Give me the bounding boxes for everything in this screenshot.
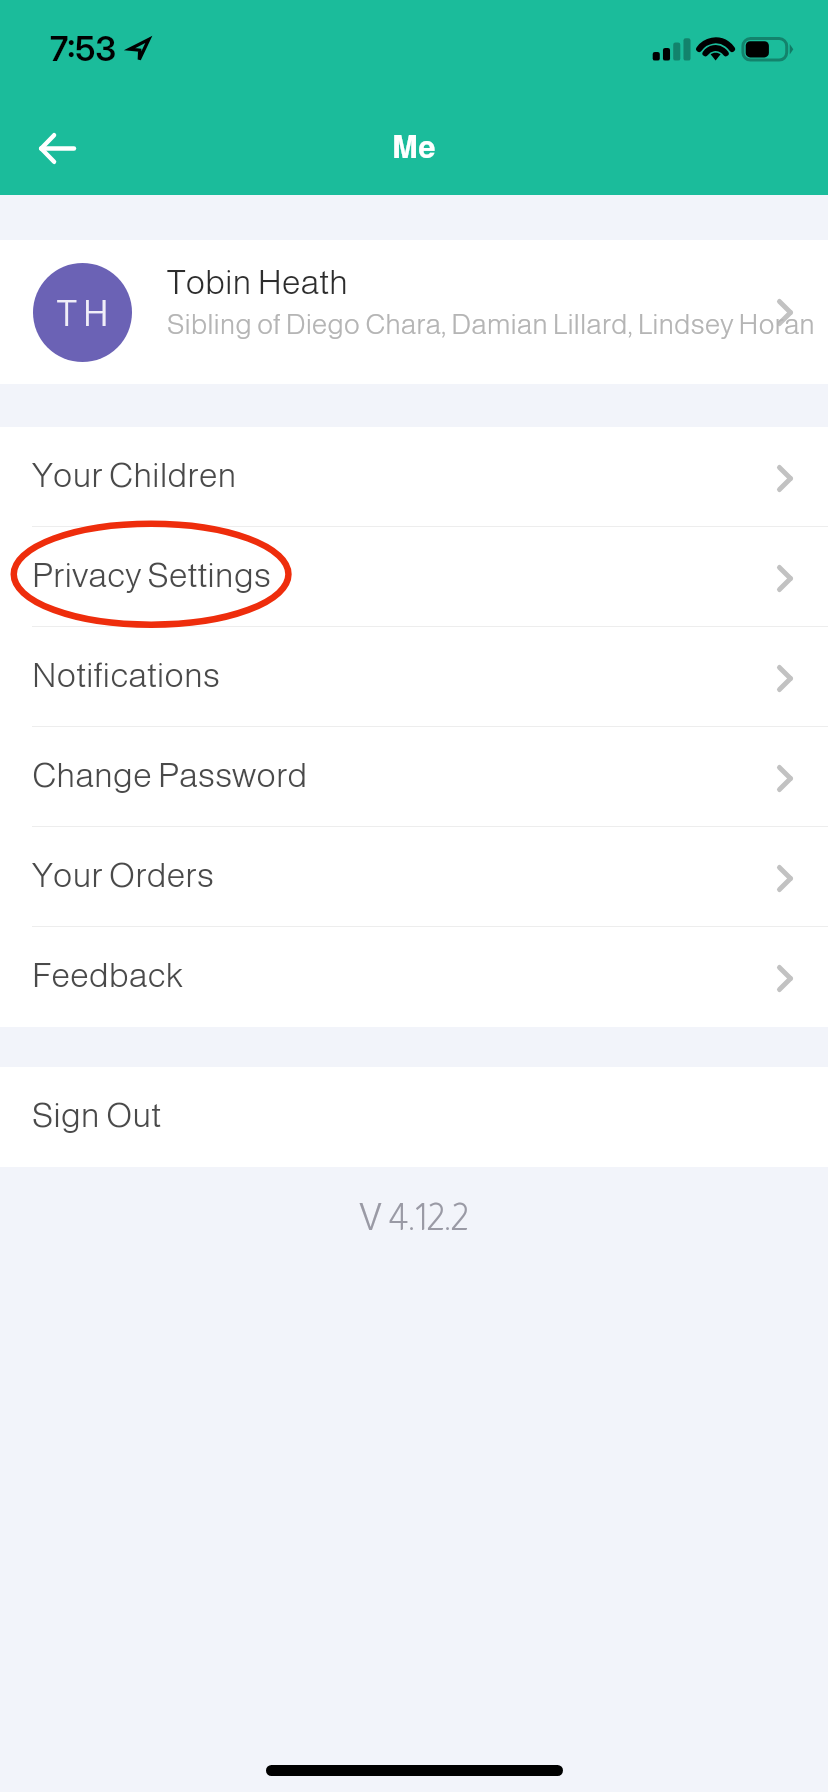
button[interactable]: Back xyxy=(12,104,100,192)
button[interactable]: Change Password xyxy=(0,727,828,827)
staticText: Privacy Settings xyxy=(32,556,777,594)
staticText: Feedback xyxy=(32,956,777,994)
staticText: Change Password xyxy=(32,756,777,794)
staticText: Sign Out xyxy=(32,1096,161,1134)
staticText: Sibling of Diego Chara, Damian Lillard, … xyxy=(167,309,815,340)
button[interactable]: Sign Out xyxy=(0,1067,828,1167)
staticText: 7:53 xyxy=(50,28,117,69)
staticText: Your Orders xyxy=(32,856,777,894)
button[interactable]: Feedback xyxy=(0,927,828,1027)
button[interactable]: T H xyxy=(0,240,828,384)
button[interactable]: Privacy Settings xyxy=(0,527,828,627)
staticText: V 4.12.2 xyxy=(359,1197,469,1238)
staticText: Tobin Heath xyxy=(167,263,348,301)
staticText: T H xyxy=(57,293,109,333)
button[interactable]: Notifications xyxy=(0,627,828,727)
staticText: Your Children xyxy=(32,456,777,494)
staticText: Notifications xyxy=(32,656,777,694)
button[interactable]: Your Orders xyxy=(0,827,828,927)
button[interactable]: Your Children xyxy=(0,427,828,527)
staticText: Me xyxy=(392,130,436,165)
